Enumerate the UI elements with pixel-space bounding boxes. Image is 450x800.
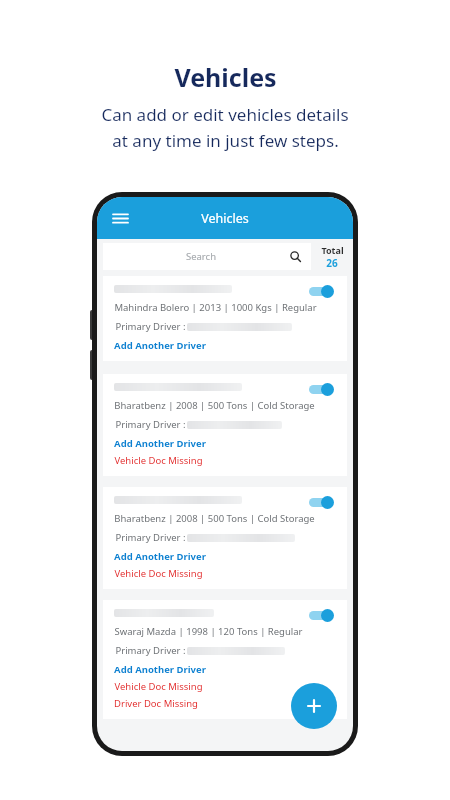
button[interactable]: Toggle vehicle active bbox=[307, 494, 337, 510]
staticText: Add Another Driver bbox=[114, 663, 206, 676]
staticText: Primary Driver : bbox=[114, 418, 187, 431]
button[interactable]: Toggle vehicle active bbox=[307, 381, 337, 397]
staticText: Search bbox=[112, 250, 290, 263]
staticText: Primary Driver : bbox=[114, 644, 187, 657]
button[interactable]: Add vehicle bbox=[291, 683, 337, 729]
staticText: 26 bbox=[326, 256, 338, 270]
staticText: Add Another Driver bbox=[114, 339, 206, 352]
staticText: Vehicle Doc Missing bbox=[114, 567, 203, 580]
button[interactable]: Toggle vehicle active bbox=[307, 283, 337, 299]
button[interactable]: Add Another Driver bbox=[114, 663, 206, 676]
staticText: Can add or edit vehicles details bbox=[101, 103, 349, 126]
button[interactable]: Swaraj Mazda | 1998 | 120 Tons | Regular bbox=[103, 600, 347, 719]
staticText: Add Another Driver bbox=[114, 437, 206, 450]
staticText: Total bbox=[321, 244, 344, 256]
staticText: at any time in just few steps. bbox=[112, 129, 339, 152]
staticText: Vehicle Doc Missing bbox=[114, 454, 203, 467]
button[interactable]: Add Another Driver bbox=[114, 339, 206, 352]
staticText: Bharatbenz | 2008 | 500 Tons | Cold Stor… bbox=[114, 399, 315, 412]
button[interactable]: Menu bbox=[105, 203, 135, 233]
staticText: Primary Driver : bbox=[114, 320, 187, 333]
staticText: Swaraj Mazda | 1998 | 120 Tons | Regular bbox=[114, 625, 303, 638]
button[interactable]: Mahindra Bolero | 2013 | 1000 Kgs | Regu… bbox=[103, 276, 347, 361]
button[interactable]: Bharatbenz | 2008 | 500 Tons | Cold Stor… bbox=[103, 374, 347, 476]
staticText: Vehicle Doc Missing bbox=[114, 680, 203, 693]
button[interactable]: Search bbox=[103, 243, 311, 270]
button[interactable]: Total bbox=[311, 244, 353, 270]
staticText: Driver Doc Missing bbox=[114, 697, 198, 710]
staticText: Vehicles bbox=[201, 210, 249, 227]
staticText: Mahindra Bolero | 2013 | 1000 Kgs | Regu… bbox=[114, 301, 317, 314]
button[interactable]: Toggle vehicle active bbox=[307, 607, 337, 623]
button[interactable]: Add Another Driver bbox=[114, 550, 206, 563]
staticText: Primary Driver : bbox=[114, 531, 187, 544]
button[interactable]: Bharatbenz | 2008 | 500 Tons | Cold Stor… bbox=[103, 487, 347, 589]
button[interactable]: Add Another Driver bbox=[114, 437, 206, 450]
staticText: Bharatbenz | 2008 | 500 Tons | Cold Stor… bbox=[114, 512, 315, 525]
staticText: Add Another Driver bbox=[114, 550, 206, 563]
staticText: Vehicles bbox=[174, 60, 277, 94]
